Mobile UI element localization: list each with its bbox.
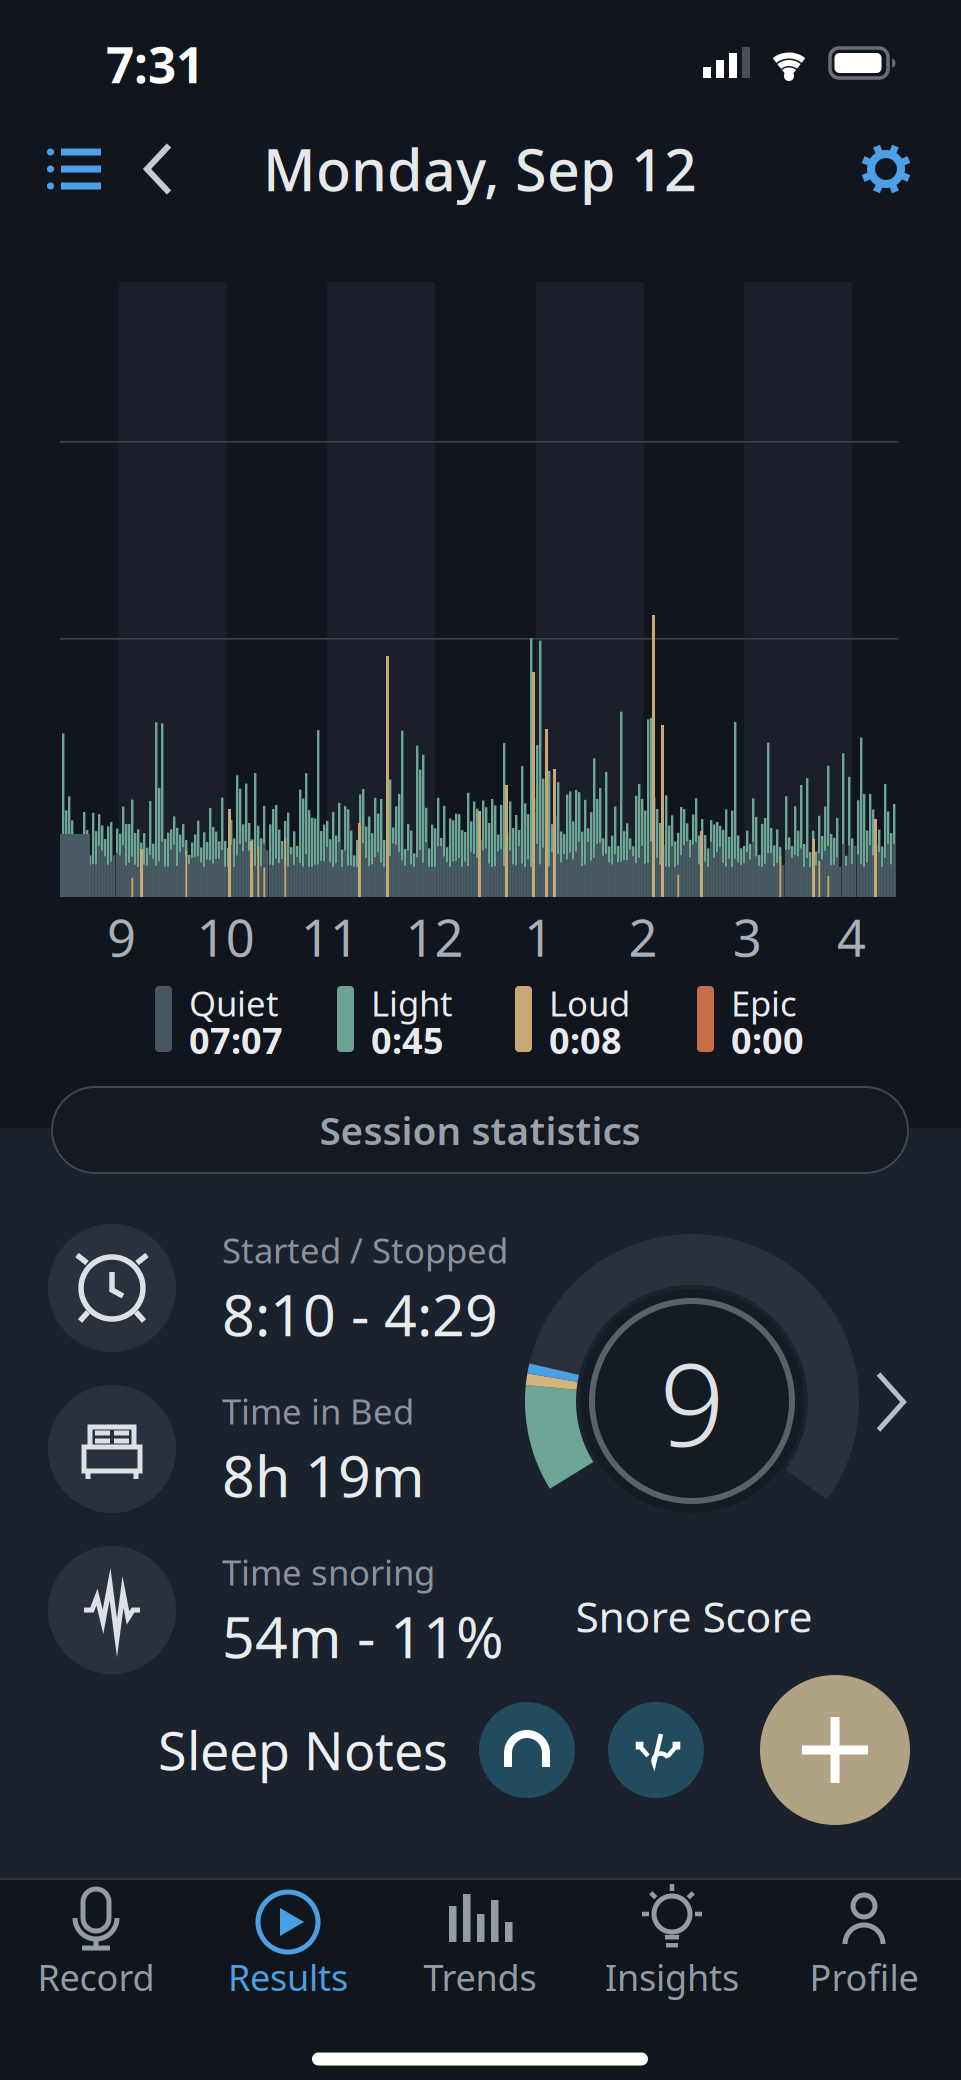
staticText: 12 bbox=[405, 903, 463, 971]
staticText: Loud bbox=[549, 980, 630, 1026]
staticText: Profile bbox=[809, 1953, 918, 2001]
button[interactable]: Results bbox=[192, 1878, 384, 2018]
staticText: Time in Bed bbox=[222, 1388, 414, 1434]
button[interactable]: Settings bbox=[846, 129, 926, 209]
button[interactable]: Session statistics bbox=[52, 1087, 908, 1173]
staticText: Record bbox=[37, 1953, 154, 2001]
staticText: 8:10 - 4:29 bbox=[222, 1276, 498, 1352]
staticText: 1 bbox=[524, 903, 553, 971]
button[interactable]: Insights bbox=[576, 1878, 768, 2018]
staticText: 2 bbox=[628, 903, 657, 971]
staticText: 9 bbox=[107, 903, 136, 971]
staticText: Insights bbox=[605, 1953, 739, 2001]
staticText: 0:08 bbox=[549, 1016, 622, 1064]
staticText: 4 bbox=[837, 903, 866, 971]
staticText: 7:31 bbox=[106, 31, 204, 97]
staticText: 0:45 bbox=[371, 1016, 444, 1064]
staticText: Light bbox=[371, 980, 453, 1026]
staticText: 9 bbox=[659, 1326, 724, 1478]
button[interactable]: Record bbox=[0, 1878, 192, 2018]
staticText: Epic bbox=[731, 980, 797, 1026]
staticText: 54m - 11% bbox=[222, 1598, 504, 1674]
button[interactable]: Back bbox=[130, 129, 186, 209]
staticText: 10 bbox=[197, 903, 255, 971]
staticText: 0:00 bbox=[731, 1016, 804, 1064]
staticText: Time snoring bbox=[222, 1549, 435, 1595]
staticText: Monday, Sep 12 bbox=[263, 131, 697, 207]
staticText: Snore Score bbox=[575, 1588, 812, 1644]
button[interactable]: Snore Score details bbox=[861, 1357, 921, 1447]
button[interactable]: Trends bbox=[384, 1878, 576, 2018]
button[interactable]: Sessions list bbox=[34, 129, 114, 209]
staticText: Results bbox=[228, 1953, 348, 2001]
staticText: Started / Stopped bbox=[222, 1227, 508, 1273]
button[interactable]: Mouthguard note bbox=[479, 1702, 575, 1798]
staticText: Quiet bbox=[189, 980, 279, 1026]
button[interactable]: Profile bbox=[768, 1878, 960, 2018]
staticText: Session statistics bbox=[319, 1104, 640, 1156]
button[interactable]: Add sleep note bbox=[760, 1675, 910, 1825]
staticText: 07:07 bbox=[189, 1016, 283, 1064]
staticText: Sleep Notes bbox=[158, 1715, 448, 1785]
button[interactable]: Nasal note bbox=[608, 1702, 704, 1798]
staticText: 3 bbox=[733, 903, 762, 971]
staticText: 8h 19m bbox=[222, 1437, 425, 1513]
staticText: 11 bbox=[301, 903, 359, 971]
staticText: Trends bbox=[423, 1953, 536, 2001]
